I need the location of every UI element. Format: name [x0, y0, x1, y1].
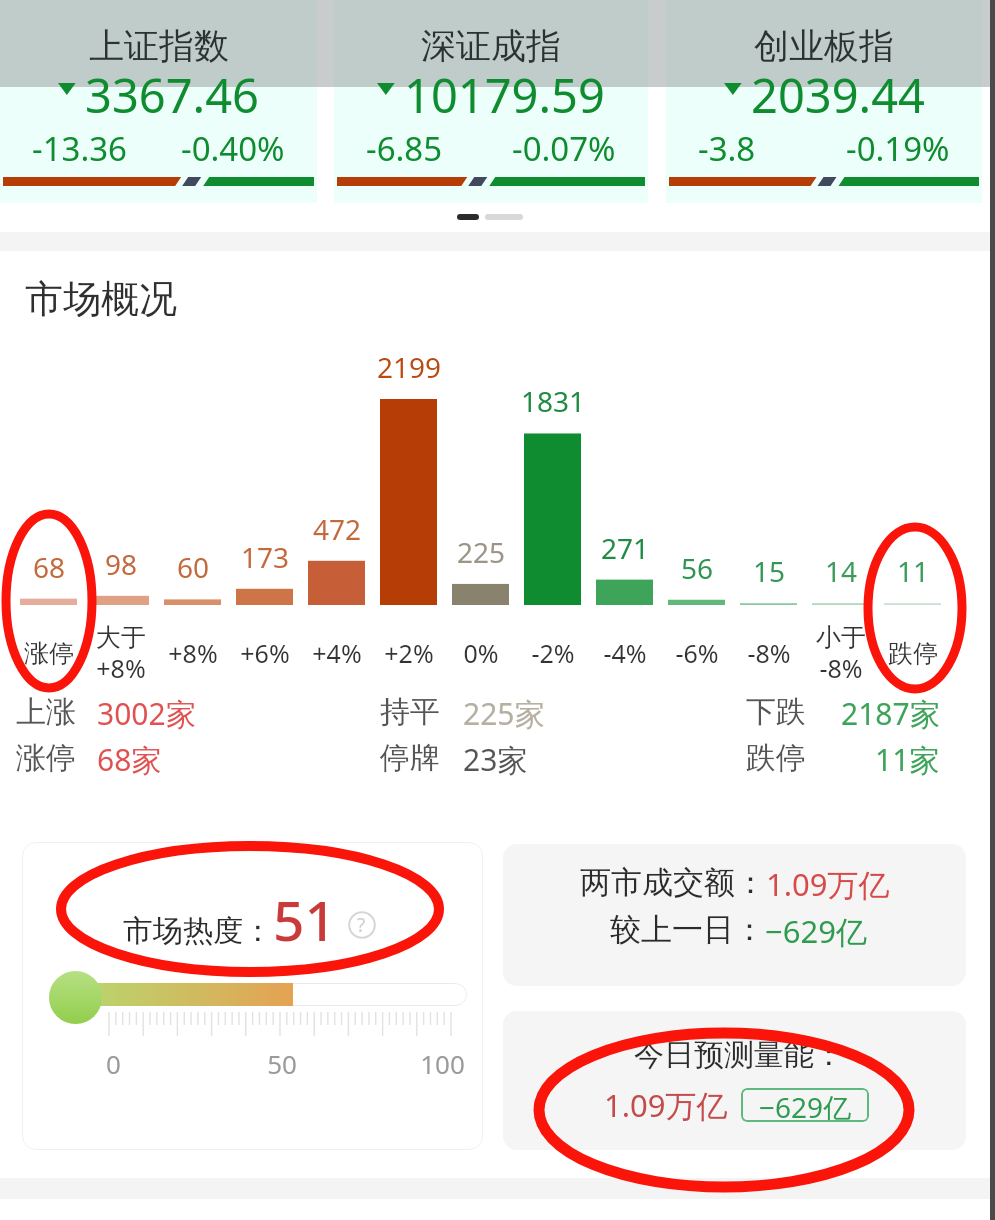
- staticText: 2199: [377, 348, 442, 386]
- staticText: 涨停: [16, 739, 76, 777]
- staticText: -0.19%: [846, 126, 950, 171]
- staticText: 472: [313, 510, 362, 548]
- staticText: 3367.46: [85, 63, 259, 113]
- staticText: -0.07%: [512, 126, 616, 171]
- staticText: 3002家: [97, 693, 196, 731]
- staticText: +2%: [368, 636, 450, 670]
- staticText: 市场概况: [25, 275, 177, 317]
- staticText: 11: [897, 552, 930, 590]
- staticText: 14: [825, 552, 858, 590]
- staticText: -8%: [728, 636, 810, 670]
- staticText: -3.8: [698, 126, 756, 171]
- staticText: 两市成交额：: [580, 863, 766, 902]
- staticText: 2039.44: [751, 63, 925, 113]
- staticText: +4%: [296, 636, 378, 670]
- staticText: 68家: [97, 739, 162, 777]
- staticText: −629亿: [765, 910, 867, 952]
- staticText: 下跌: [746, 693, 806, 731]
- button[interactable]: Help: [347, 910, 376, 939]
- staticText: -6%: [656, 636, 738, 670]
- staticText: -13.36: [32, 126, 127, 171]
- button[interactable]: 深证成指: [334, 0, 648, 203]
- staticText: 跌停: [872, 638, 954, 669]
- button[interactable]: 今日预测量能：: [503, 1011, 966, 1150]
- staticText: 深证成指: [421, 24, 561, 68]
- staticText: 今日预测量能：: [634, 1036, 844, 1074]
- staticText: 市场热度：: [123, 912, 273, 950]
- staticText: 0: [106, 1046, 121, 1078]
- staticText: 60: [177, 548, 210, 586]
- staticText: 23家: [463, 739, 528, 777]
- staticText: 创业板指: [754, 24, 894, 68]
- staticText: 1.09万亿: [766, 863, 890, 905]
- staticText: 10179.59: [404, 63, 605, 113]
- staticText: 0%: [440, 636, 522, 670]
- staticText: 271: [601, 529, 650, 567]
- button[interactable]: 创业板指: [666, 0, 982, 203]
- staticText: 11家: [875, 739, 940, 777]
- staticText: 98: [105, 545, 138, 583]
- button[interactable]: 上证指数: [0, 0, 317, 203]
- staticText: -2%: [512, 636, 594, 670]
- staticText: 173: [241, 538, 290, 576]
- staticText: 大于 +8%: [80, 622, 162, 685]
- staticText: 停牌: [380, 739, 440, 777]
- staticText: 涨停: [8, 638, 90, 669]
- staticText: 225: [457, 533, 506, 571]
- staticText: +6%: [224, 636, 306, 670]
- staticText: -0.40%: [181, 126, 285, 171]
- button[interactable]: 两市成交额：: [503, 844, 966, 986]
- staticText: 较上一日：: [610, 910, 765, 949]
- staticText: 56: [681, 549, 714, 587]
- staticText: 上证指数: [89, 24, 229, 68]
- staticText: 100: [420, 1046, 465, 1078]
- staticText: 1.09万亿: [604, 1084, 728, 1126]
- staticText: 持平: [380, 693, 440, 731]
- staticText: 上涨: [16, 693, 76, 731]
- button[interactable]: 市场热度：: [22, 842, 483, 1150]
- staticText: ?: [357, 912, 366, 938]
- staticText: 2187家: [841, 693, 940, 731]
- staticText: +8%: [152, 636, 234, 670]
- staticText: 跌停: [746, 739, 806, 777]
- staticText: 1831: [521, 382, 586, 420]
- staticText: -6.85: [366, 126, 443, 171]
- staticText: -4%: [584, 636, 666, 670]
- staticText: −629亿: [759, 1088, 852, 1122]
- staticText: 68: [33, 548, 66, 586]
- staticText: 50: [267, 1046, 297, 1078]
- staticText: 小于 -8%: [800, 622, 882, 685]
- staticText: 15: [753, 552, 786, 590]
- staticText: 225家: [463, 693, 545, 731]
- staticText: 51: [273, 882, 336, 957]
